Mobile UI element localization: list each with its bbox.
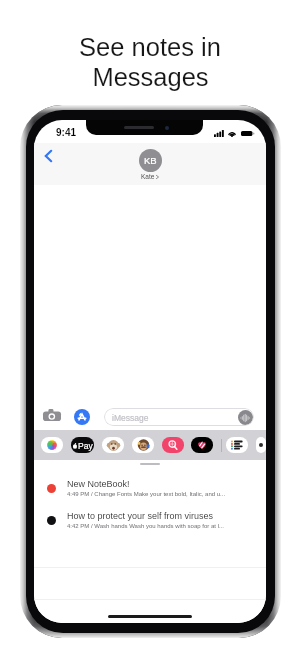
button[interactable]: Digital Touch xyxy=(191,437,213,453)
staticText: See notes in xyxy=(79,33,221,61)
staticText: Messages xyxy=(92,63,209,91)
staticText: 4:42 PM / Wash hands Wash you hands with… xyxy=(67,523,224,530)
button[interactable]: How to protect your self from viruses xyxy=(34,504,266,536)
button[interactable]: Store xyxy=(162,437,184,453)
button[interactable]: Memoji xyxy=(132,437,154,453)
button[interactable]: iMessage xyxy=(104,408,254,426)
staticText: 4:49 PM / Change Fonts Make your text bo… xyxy=(67,491,226,498)
staticText: Pay xyxy=(78,441,93,450)
staticText: KB xyxy=(144,155,157,166)
button[interactable]: More xyxy=(256,437,266,453)
button[interactable]: Back xyxy=(37,145,59,167)
staticText: 9:41 xyxy=(56,127,77,138)
staticText: How to protect your self from viruses xyxy=(67,511,214,521)
staticText: New NoteBook! xyxy=(67,479,130,489)
button[interactable]: Kate xyxy=(139,149,162,172)
button[interactable]: Record audio xyxy=(238,410,253,425)
button[interactable]: Apple Pay xyxy=(71,437,94,453)
button[interactable]: Camera xyxy=(42,407,62,423)
button[interactable]: Notes xyxy=(226,437,248,453)
button[interactable]: Kate xyxy=(141,173,159,180)
button[interactable]: New NoteBook! xyxy=(34,472,266,504)
button[interactable]: Photos xyxy=(41,437,63,453)
button[interactable]: App Store xyxy=(74,409,90,425)
button[interactable]: Memoji xyxy=(102,437,124,453)
staticText: Kate xyxy=(141,173,155,180)
staticText: iMessage xyxy=(112,413,149,422)
